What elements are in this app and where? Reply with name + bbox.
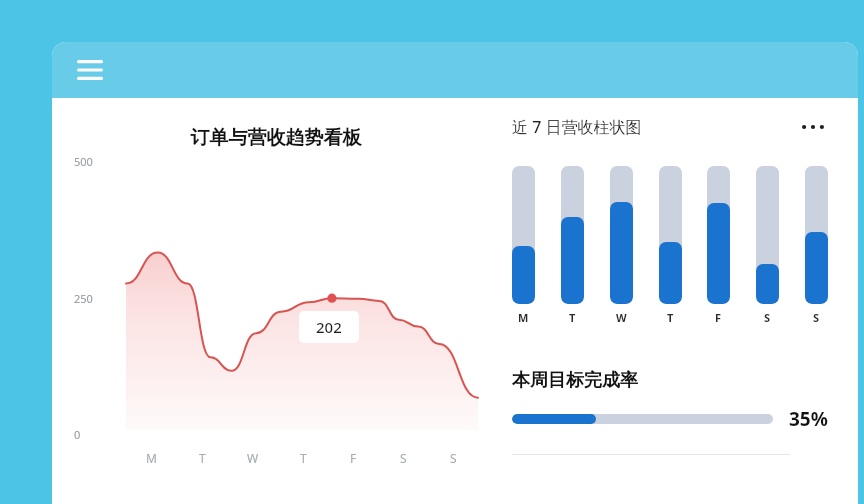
button[interactable] (561, 166, 584, 304)
staticText: 35% (789, 406, 828, 432)
staticText: S (813, 310, 820, 325)
staticText: T (199, 450, 206, 466)
staticText: 近 7 日营收柱状图 (512, 116, 798, 138)
button[interactable]: 202 (299, 311, 359, 343)
staticText: 202 (316, 317, 342, 337)
staticText: S (400, 450, 407, 466)
button[interactable] (610, 166, 633, 304)
staticText: 250 (74, 291, 93, 306)
button[interactable]: Menu (70, 50, 110, 90)
staticText: W (616, 310, 627, 325)
staticText: T (300, 450, 307, 466)
button[interactable] (756, 166, 779, 304)
staticText: M (518, 310, 529, 325)
staticText: W (247, 450, 259, 466)
staticText: T (569, 310, 576, 325)
button[interactable] (512, 166, 535, 304)
staticText: 0 (74, 427, 81, 442)
staticText: S (450, 450, 457, 466)
staticText: 本周目标完成率 (512, 369, 638, 392)
staticText: S (764, 310, 771, 325)
staticText: M (146, 450, 157, 466)
button[interactable] (707, 166, 730, 304)
staticText: T (667, 310, 674, 325)
button[interactable] (805, 166, 828, 304)
button[interactable]: More options (798, 112, 828, 142)
button[interactable] (512, 414, 773, 424)
staticText: 500 (74, 154, 93, 169)
staticText: F (715, 310, 722, 325)
staticText: 订单与营收趋势看板 (52, 126, 500, 150)
staticText: F (350, 450, 357, 466)
button[interactable] (659, 166, 682, 304)
